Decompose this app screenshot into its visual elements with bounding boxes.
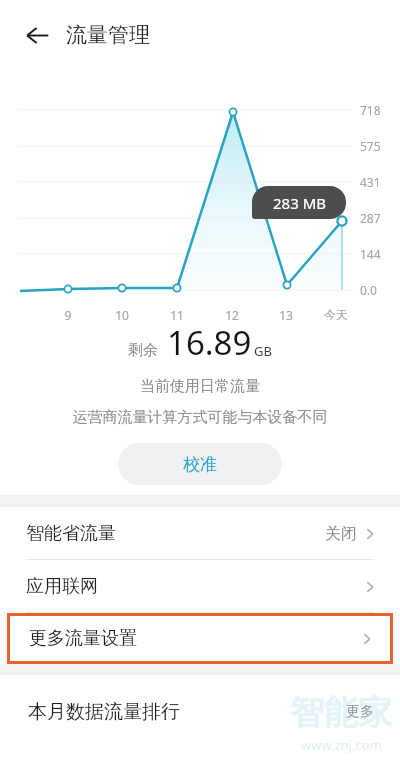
staticText: 今天 [314,307,358,320]
button[interactable]: 本月数据流量排行 [0,675,400,749]
staticText: 16.89 [167,320,252,365]
staticText: 更多流量设置 [29,627,137,650]
staticText: 431 [360,174,381,190]
staticText: 283 MB [273,193,326,213]
button[interactable]: 返回 [20,18,54,52]
button[interactable]: 校准 [118,443,282,485]
button[interactable]: 应用联网 [0,560,400,613]
staticText: 更多 [346,703,374,721]
staticText: 剩余 [128,341,158,360]
staticText: 关闭 [325,524,357,544]
staticText: GB [254,342,272,360]
staticText: www.znj.com [301,736,382,754]
staticText: 287 [360,210,381,226]
staticText: 9 [46,307,90,320]
staticText: 11 [155,307,199,320]
staticText: 0.0 [360,282,377,298]
button[interactable]: 更多流量设置 [10,616,390,661]
staticText: 运营商流量计算方式可能与本设备不同 [0,408,400,427]
staticText: 流量管理 [66,22,150,48]
staticText: 智能省流量 [26,522,116,545]
staticText: 144 [360,246,381,262]
staticText: 12 [210,307,254,320]
staticText: 应用联网 [26,575,98,598]
staticText: 当前使用日常流量 [0,377,400,396]
staticText: 575 [360,138,381,154]
button[interactable]: 智能省流量 [0,507,400,560]
staticText: 13 [264,307,308,320]
staticText: 校准 [183,454,217,475]
staticText: 智能家 [290,691,392,734]
staticText: 本月数据流量排行 [28,700,180,724]
staticText: 718 [360,102,381,118]
staticText: 10 [100,307,144,320]
